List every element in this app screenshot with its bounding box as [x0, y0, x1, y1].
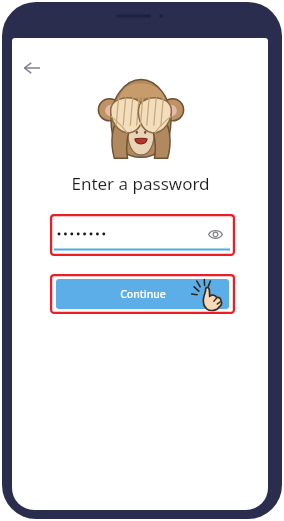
- staticText: Continue: [120, 287, 166, 301]
- button[interactable]: Show password: [54, 218, 231, 252]
- staticText: Enter a password: [71, 172, 210, 195]
- button[interactable]: Back: [14, 50, 50, 86]
- button[interactable]: Show password: [204, 223, 226, 245]
- button[interactable]: Continue: [56, 279, 229, 309]
